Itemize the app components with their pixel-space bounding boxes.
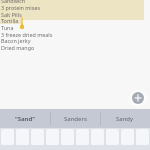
staticText: Bacon jerky (1, 37, 31, 44)
staticText: 3 protein mixes (1, 4, 41, 11)
staticText: Salt Pills (1, 11, 22, 18)
staticText: Tuna (1, 24, 14, 31)
staticText: “Sand” (15, 115, 35, 123)
staticText: Sandy (116, 115, 134, 123)
staticText: Sanders (64, 115, 87, 123)
button[interactable]: Sandy (100, 109, 150, 128)
button[interactable]: “Sand” (0, 109, 50, 128)
button[interactable]: Sanders (50, 109, 100, 128)
staticText: Dried mango (1, 44, 35, 51)
staticText: Sandwich (1, 0, 26, 4)
button[interactable]: Add item (132, 92, 144, 104)
staticText: 3 freeze dried meals (1, 31, 53, 38)
staticText: Tortilla (1, 17, 19, 24)
